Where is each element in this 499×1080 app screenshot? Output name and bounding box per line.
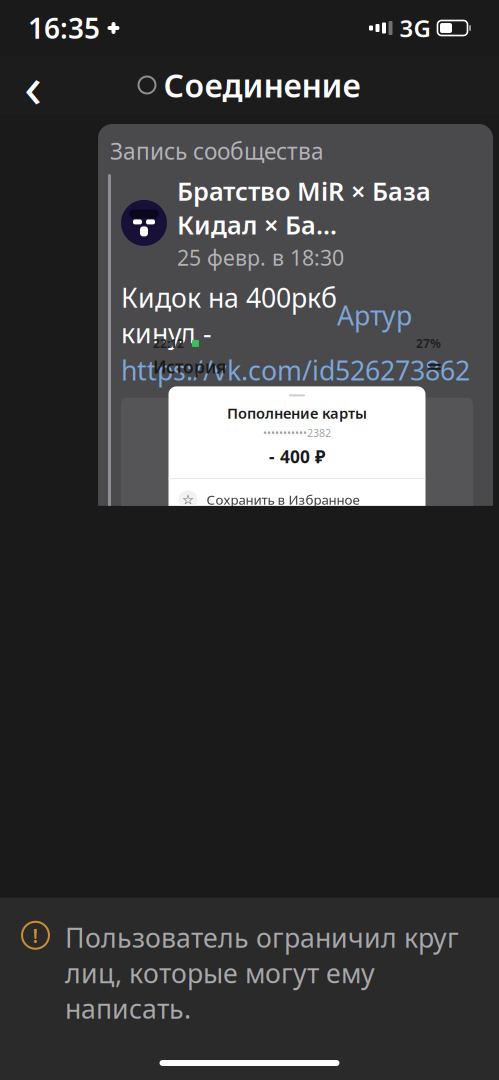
staticText: https://vk.com/id526273862 <box>181 883 362 950</box>
staticText: Пополнение карты <box>227 403 367 423</box>
staticText: - 400 ₽ <box>269 445 325 468</box>
staticText: Запись сообщества <box>110 136 324 166</box>
staticText: Артур <box>337 297 412 333</box>
staticText: Сохранить в Избранное <box>206 491 359 508</box>
staticText: ↗ <box>131 898 158 935</box>
button[interactable]: Открыть запись <box>121 962 483 1022</box>
staticText: История <box>153 355 226 378</box>
staticText: 3G <box>399 12 430 44</box>
staticText: https://vk.com/id526273862 <box>121 352 470 388</box>
staticText: 16:35 <box>28 9 100 47</box>
staticText: Пользователь ограничил круг лиц, которые… <box>65 920 459 1026</box>
staticText: Соединение <box>163 64 360 106</box>
staticText: •••••••••••2382 <box>263 426 331 440</box>
staticText: Открыть запись <box>197 974 407 1010</box>
button[interactable]: ↗ <box>121 883 483 962</box>
staticText: ! <box>32 922 38 949</box>
staticText: 22:12 <box>153 335 184 351</box>
button[interactable]: Back <box>8 60 58 110</box>
staticText: ‹ <box>24 46 42 124</box>
staticText: Братство MiR × База Кидал × Ба… <box>177 174 431 241</box>
staticText: 25 февр. в 18:30 <box>177 243 344 272</box>
staticText: ☆ <box>182 492 194 507</box>
staticText: Номер транзакции <box>231 929 330 943</box>
staticText: 27% <box>416 335 441 351</box>
staticText: Кидок на 400ркб кинул - <box>121 280 337 350</box>
staticText: Номер счета <box>231 889 296 904</box>
